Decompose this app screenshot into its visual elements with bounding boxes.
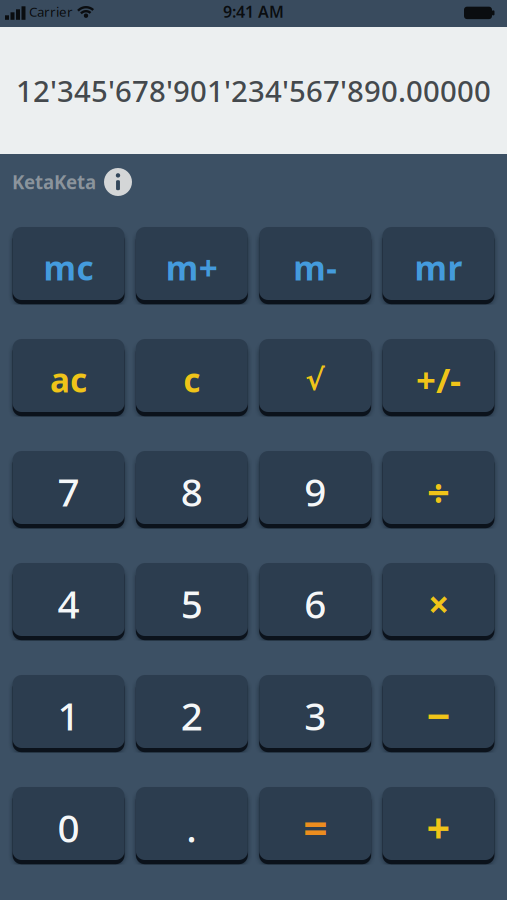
- staticText: 0: [58, 802, 80, 853]
- button[interactable]: m+: [136, 227, 248, 300]
- staticText: 1: [58, 690, 80, 741]
- staticText: 9: [304, 466, 326, 517]
- button[interactable]: 8: [136, 451, 248, 524]
- button[interactable]: 3: [259, 675, 371, 748]
- button[interactable]: ×: [382, 563, 494, 636]
- staticText: −: [426, 688, 450, 743]
- button[interactable]: 0: [13, 787, 125, 860]
- button[interactable]: 9: [259, 451, 371, 524]
- button[interactable]: 1: [13, 675, 125, 748]
- button[interactable]: =: [259, 787, 371, 860]
- staticText: +/-: [416, 356, 461, 402]
- staticText: √: [305, 363, 325, 396]
- staticText: ac: [50, 357, 87, 402]
- staticText: m+: [166, 245, 218, 290]
- button[interactable]: ÷: [382, 451, 494, 524]
- button[interactable]: c: [136, 339, 248, 412]
- button[interactable]: m-: [259, 227, 371, 300]
- staticText: 7: [58, 466, 80, 517]
- button[interactable]: +: [382, 787, 494, 860]
- staticText: +: [426, 800, 450, 855]
- staticText: c: [183, 357, 200, 402]
- button[interactable]: 7: [13, 451, 125, 524]
- staticText: 8: [181, 466, 203, 517]
- button[interactable]: 2: [136, 675, 248, 748]
- staticText: 9:41 AM: [223, 1, 284, 22]
- staticText: 6: [304, 578, 326, 629]
- button[interactable]: mr: [382, 227, 494, 300]
- button[interactable]: 4: [13, 563, 125, 636]
- staticText: ×: [428, 579, 449, 628]
- button[interactable]: .: [136, 787, 248, 860]
- staticText: .: [186, 802, 197, 853]
- button[interactable]: √: [259, 339, 371, 412]
- button[interactable]: About KetaKeta: [104, 168, 132, 196]
- staticText: 2: [181, 690, 203, 741]
- staticText: mc: [44, 245, 94, 290]
- button[interactable]: ac: [13, 339, 125, 412]
- staticText: ÷: [427, 465, 450, 518]
- staticText: 5: [181, 578, 203, 629]
- staticText: =: [303, 799, 327, 856]
- button[interactable]: 6: [259, 563, 371, 636]
- button[interactable]: 5: [136, 563, 248, 636]
- button[interactable]: mc: [13, 227, 125, 300]
- staticText: 4: [58, 578, 80, 629]
- staticText: KetaKeta: [12, 170, 96, 194]
- staticText: 3: [304, 690, 326, 741]
- staticText: 12'345'678'901'234'567'890.00000: [16, 71, 491, 110]
- staticText: mr: [414, 245, 462, 290]
- staticText: m-: [293, 245, 337, 290]
- button[interactable]: +/-: [382, 339, 494, 412]
- button[interactable]: −: [382, 675, 494, 748]
- staticText: Carrier: [29, 3, 73, 20]
